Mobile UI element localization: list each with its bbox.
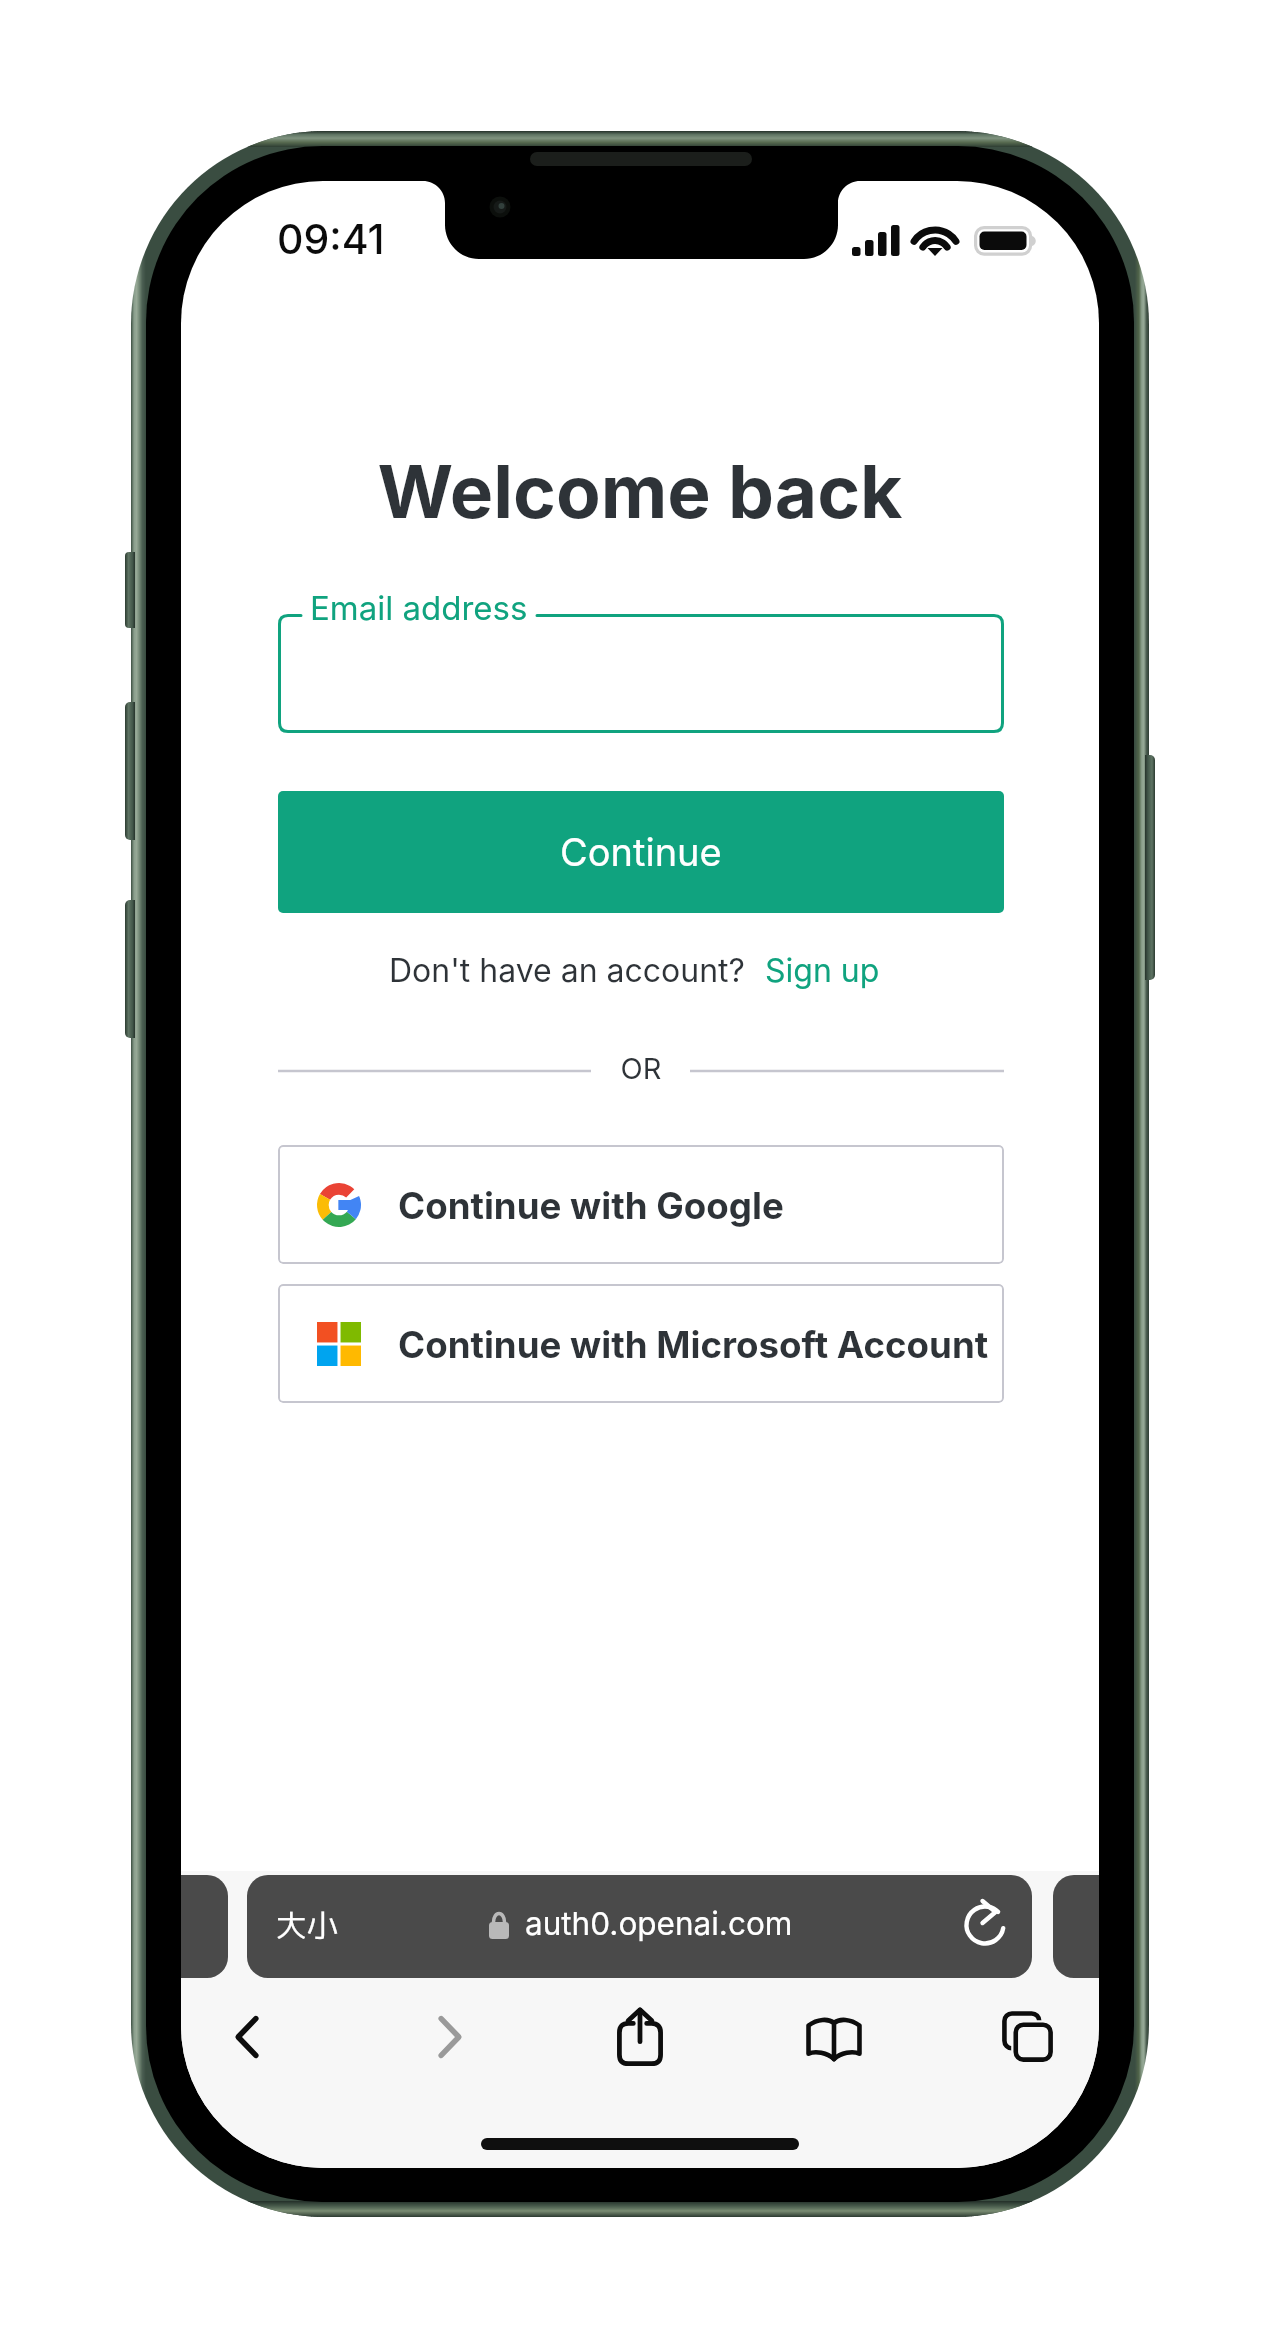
staticText: 大小 bbox=[276, 1904, 338, 1947]
button[interactable]: Sign up bbox=[765, 951, 880, 990]
button[interactable]: Bookmarks bbox=[788, 1991, 880, 2083]
staticText: OR bbox=[278, 1051, 1004, 1086]
other: Reload bbox=[955, 1894, 1015, 1954]
button[interactable]: Tabs bbox=[983, 1992, 1075, 2084]
button[interactable]: Back bbox=[201, 1991, 293, 2083]
staticText: auth0.openai.com bbox=[525, 1904, 793, 1942]
staticText: Continue bbox=[560, 829, 722, 875]
button[interactable]: Email address bbox=[278, 614, 1004, 733]
staticText: Don't have an account? bbox=[389, 951, 745, 990]
staticText: Sign up bbox=[765, 951, 880, 990]
button[interactable]: Forward bbox=[404, 1991, 496, 2083]
button[interactable]: 大小 bbox=[247, 1875, 1032, 1978]
button[interactable]: Continue bbox=[278, 791, 1004, 913]
staticText: 09:41 bbox=[277, 214, 385, 264]
button[interactable]: Continue with Google bbox=[278, 1145, 1004, 1264]
staticText: Continue with Google bbox=[398, 1183, 784, 1227]
button[interactable]: Share bbox=[594, 1989, 686, 2081]
staticText: Email address bbox=[310, 588, 528, 628]
staticText: Continue with Microsoft Account bbox=[398, 1322, 989, 1366]
button[interactable]: Continue with Microsoft Account bbox=[278, 1284, 1004, 1403]
staticText: Welcome back bbox=[181, 447, 1099, 535]
